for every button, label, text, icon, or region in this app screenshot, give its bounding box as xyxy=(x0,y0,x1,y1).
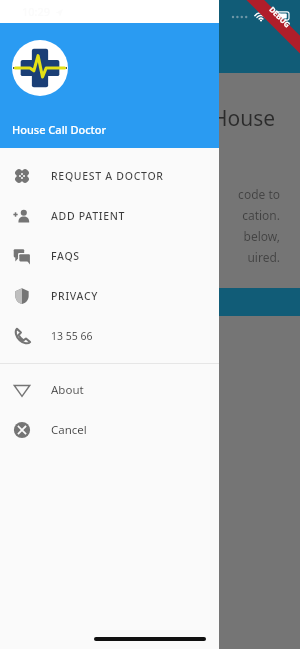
staticText: REQUEST A DOCTOR xyxy=(51,169,164,183)
staticText: uired. xyxy=(194,249,280,265)
button[interactable]: FAQS xyxy=(0,236,219,276)
staticText: About xyxy=(51,382,84,398)
button[interactable]: PRIVACY xyxy=(0,276,219,316)
staticText: cation. xyxy=(194,207,280,223)
button[interactable]: House Call Doctor xyxy=(0,23,219,148)
staticText: code to xyxy=(194,186,280,202)
staticText: FAQS xyxy=(51,249,80,263)
staticText: ADD PATIENT xyxy=(51,209,126,223)
button[interactable]: Continue xyxy=(198,288,300,316)
button[interactable]: ADD PATIENT xyxy=(0,196,219,236)
staticText: PRIVACY xyxy=(51,289,99,303)
staticText: 13 55 66 xyxy=(51,329,93,343)
staticText: House xyxy=(212,104,276,133)
button[interactable]: Cancel xyxy=(0,410,219,450)
staticText: Cancel xyxy=(51,422,87,438)
button[interactable]: 13 55 66 xyxy=(0,316,219,356)
staticText: DEBUG xyxy=(267,4,293,30)
button[interactable]: About xyxy=(0,370,219,410)
button[interactable]: REQUEST A DOCTOR xyxy=(0,156,219,196)
staticText: below, xyxy=(194,228,280,244)
staticText: House Call Doctor xyxy=(12,122,107,137)
